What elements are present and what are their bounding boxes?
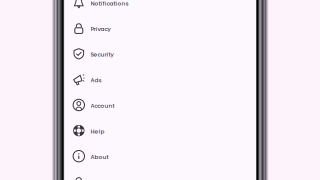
button[interactable]: Privacy — [0, 0, 181, 26]
button[interactable]: About — [0, 0, 181, 26]
button[interactable]: Ads — [0, 0, 181, 26]
staticText: Notifications — [91, 0, 129, 7]
button[interactable]: Account — [0, 0, 181, 26]
staticText: Account — [91, 102, 115, 110]
button[interactable]: Blocking — [0, 0, 181, 26]
button[interactable]: Help — [0, 0, 181, 26]
button[interactable]: Security — [0, 0, 181, 26]
staticText: About — [91, 153, 109, 161]
staticText: Ads — [91, 76, 102, 84]
staticText: Help — [91, 127, 105, 135]
staticText: Security — [91, 51, 114, 59]
button[interactable]: Notifications — [0, 0, 181, 26]
staticText: Privacy — [91, 25, 111, 33]
